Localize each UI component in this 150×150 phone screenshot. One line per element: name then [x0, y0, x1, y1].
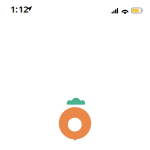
staticText: 1:12 [10, 3, 28, 15]
